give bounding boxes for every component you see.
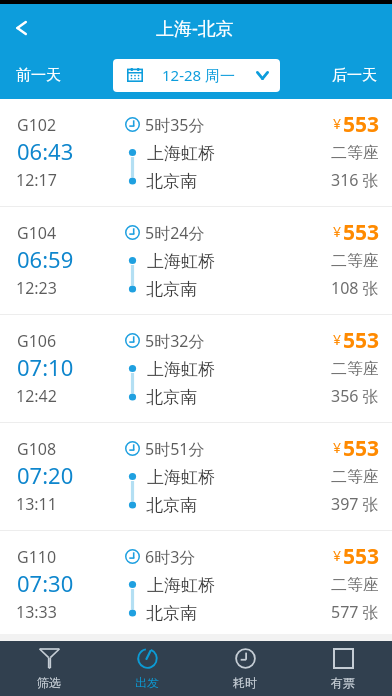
staticText: 5时24分 <box>145 222 205 244</box>
staticText: 上海虹桥 <box>147 575 215 596</box>
button[interactable]: 出发 <box>98 641 196 696</box>
staticText: 577 张 <box>331 601 379 623</box>
button[interactable]: Back <box>0 4 42 51</box>
staticText: 二等座 <box>331 143 379 163</box>
staticText: G110 <box>17 546 57 568</box>
staticText: 北京南 <box>146 387 197 408</box>
staticText: 耗时 <box>233 675 257 690</box>
button[interactable]: G108 <box>0 423 392 530</box>
staticText: 筛选 <box>37 675 61 690</box>
staticText: 06:59 <box>17 244 74 274</box>
staticText: 5时32分 <box>145 330 205 352</box>
button[interactable]: G104 <box>0 207 392 314</box>
button[interactable]: G106 <box>0 315 392 422</box>
staticText: 5时35分 <box>145 114 205 136</box>
staticText: 108 张 <box>331 277 379 299</box>
staticText: 北京南 <box>146 603 197 624</box>
staticText: 前一天 <box>16 66 61 85</box>
staticText: 07:30 <box>17 568 74 598</box>
staticText: 397 张 <box>331 493 379 515</box>
staticText: 356 张 <box>331 385 379 407</box>
staticText: 上海虹桥 <box>147 359 215 380</box>
staticText: 有票 <box>331 675 355 690</box>
staticText: ¥ <box>333 330 342 349</box>
staticText: 二等座 <box>331 359 379 379</box>
staticText: 北京南 <box>146 495 197 516</box>
staticText: 553 <box>343 326 380 355</box>
staticText: 553 <box>343 542 380 571</box>
staticText: 553 <box>343 110 380 139</box>
staticText: 12:23 <box>16 277 57 299</box>
button[interactable]: 后一天 <box>292 51 392 99</box>
staticText: 上海-北京 <box>156 16 234 41</box>
staticText: 二等座 <box>331 575 379 595</box>
staticText: 12:17 <box>16 169 57 191</box>
staticText: 出发 <box>135 675 159 690</box>
staticText: G108 <box>17 438 57 460</box>
staticText: 北京南 <box>146 171 197 192</box>
staticText: ¥ <box>333 546 342 565</box>
button[interactable]: G110 <box>0 531 392 634</box>
staticText: G104 <box>17 222 57 244</box>
staticText: ¥ <box>333 438 342 457</box>
staticText: 后一天 <box>332 66 377 85</box>
staticText: G102 <box>17 114 57 136</box>
button[interactable]: 前一天 <box>0 51 100 99</box>
button[interactable]: 有票 <box>294 641 392 696</box>
staticText: 07:20 <box>17 460 74 490</box>
staticText: 二等座 <box>331 251 379 271</box>
staticText: ¥ <box>333 222 342 241</box>
staticText: 553 <box>343 434 380 463</box>
staticText: G106 <box>17 330 57 352</box>
staticText: 06:43 <box>17 136 74 166</box>
staticText: 07:10 <box>17 352 74 382</box>
staticText: 13:11 <box>16 493 57 515</box>
button[interactable]: G102 <box>0 99 392 206</box>
staticText: 6时3分 <box>145 546 196 568</box>
staticText: 北京南 <box>146 279 197 300</box>
staticText: 12-28 周一 <box>162 65 236 85</box>
staticText: 13:33 <box>16 601 57 623</box>
staticText: 上海虹桥 <box>147 251 215 272</box>
staticText: 12:42 <box>16 385 57 407</box>
staticText: 二等座 <box>331 467 379 487</box>
staticText: ¥ <box>333 114 342 133</box>
staticText: 553 <box>343 218 380 247</box>
button[interactable]: 耗时 <box>196 641 294 696</box>
button[interactable]: 12-28 周一 <box>113 59 280 92</box>
staticText: 上海虹桥 <box>147 143 215 164</box>
staticText: 316 张 <box>331 169 379 191</box>
button[interactable]: 筛选 <box>0 641 98 696</box>
staticText: 上海虹桥 <box>147 467 215 488</box>
staticText: 5时51分 <box>145 438 205 460</box>
